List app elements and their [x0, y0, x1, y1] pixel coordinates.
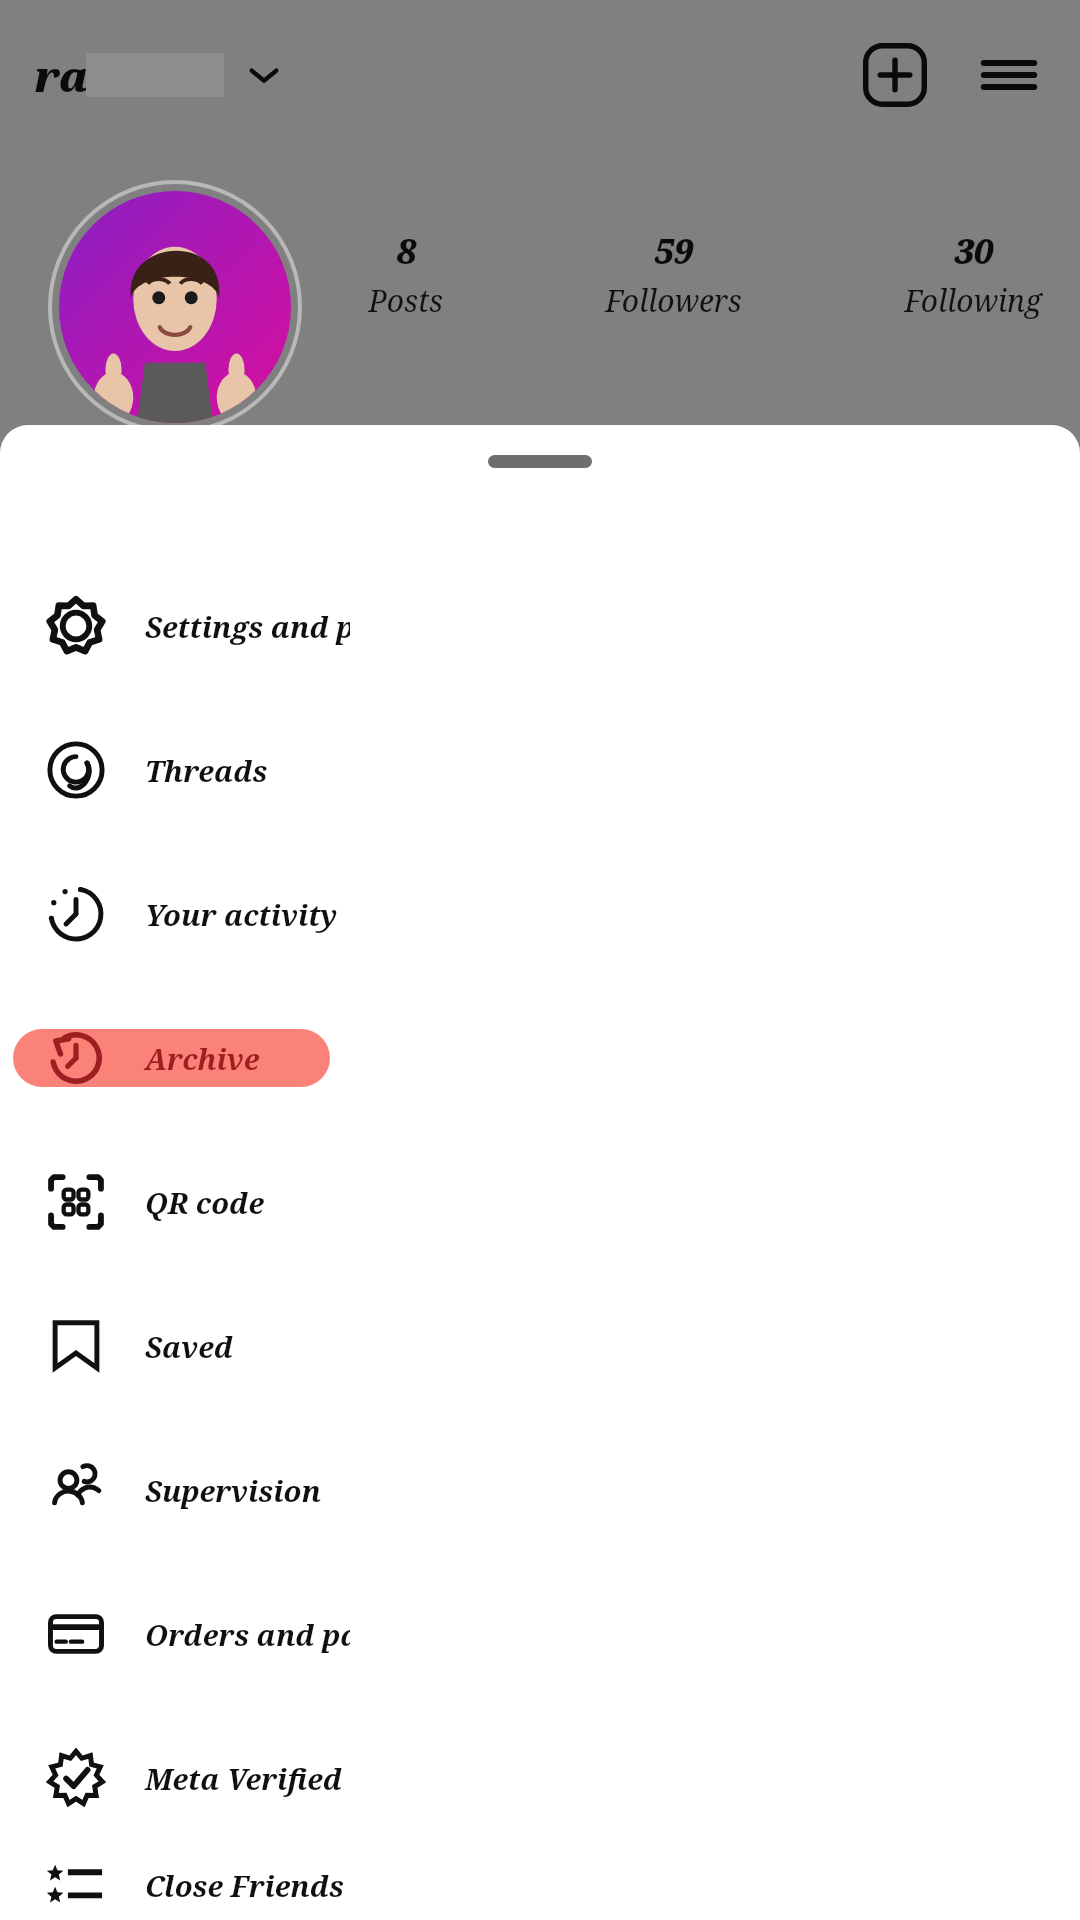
button[interactable]: 30: [896, 228, 1050, 321]
button[interactable]: Close Friends: [0, 1856, 344, 1914]
button[interactable]: Menu: [972, 38, 1046, 112]
button[interactable]: Orders and payments: [0, 1605, 350, 1663]
staticText: Saved: [145, 1327, 234, 1366]
button[interactable]: Settings and privacy: [0, 597, 350, 655]
staticText: Supervision: [145, 1471, 321, 1510]
staticText: Posts: [368, 280, 443, 321]
button[interactable]: Threads: [0, 741, 268, 799]
staticText: 59: [654, 228, 693, 274]
staticText: Settings and privacy: [145, 607, 350, 646]
staticText: Orders and payments: [145, 1615, 350, 1654]
button[interactable]: Switch account: [242, 53, 286, 97]
staticText: Meta Verified: [145, 1759, 342, 1798]
staticText: 30: [954, 228, 993, 274]
button[interactable]: Archive: [13, 1029, 330, 1087]
staticText: Threads: [145, 751, 268, 790]
button[interactable]: Your activity: [0, 885, 338, 943]
button[interactable]: 59: [597, 228, 750, 321]
staticText: Following: [904, 280, 1042, 321]
button[interactable]: QR code: [0, 1173, 264, 1231]
button[interactable]: Meta Verified: [0, 1749, 342, 1807]
staticText: Close Friends: [145, 1866, 344, 1905]
staticText: Followers: [605, 280, 742, 321]
button[interactable]: Supervision: [0, 1461, 321, 1519]
staticText: Archive: [145, 1039, 260, 1078]
staticText: Your activity: [145, 895, 338, 934]
button[interactable]: Create: [858, 38, 932, 112]
staticText: QR code: [145, 1183, 264, 1222]
button[interactable]: 8: [360, 228, 451, 321]
staticText: ra: [34, 47, 90, 104]
button[interactable]: Saved: [0, 1317, 234, 1375]
staticText: 8: [396, 228, 416, 274]
